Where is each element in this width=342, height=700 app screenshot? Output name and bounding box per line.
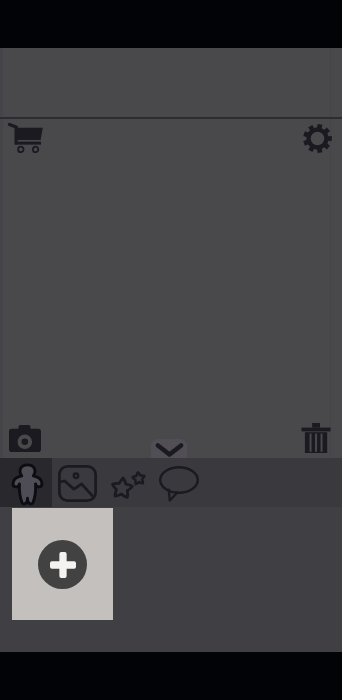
- button[interactable]: Effects: [104, 458, 156, 507]
- button[interactable]: Add: [38, 540, 87, 589]
- button[interactable]: Cart: [2, 114, 50, 162]
- button[interactable]: Avatar: [0, 458, 52, 507]
- button[interactable]: Delete: [292, 414, 340, 462]
- button[interactable]: Photos: [52, 458, 104, 507]
- button[interactable]: Chat: [156, 458, 208, 507]
- button[interactable]: Settings: [293, 114, 341, 162]
- button[interactable]: Camera: [1, 414, 49, 462]
- button[interactable]: Collapse: [151, 439, 187, 458]
